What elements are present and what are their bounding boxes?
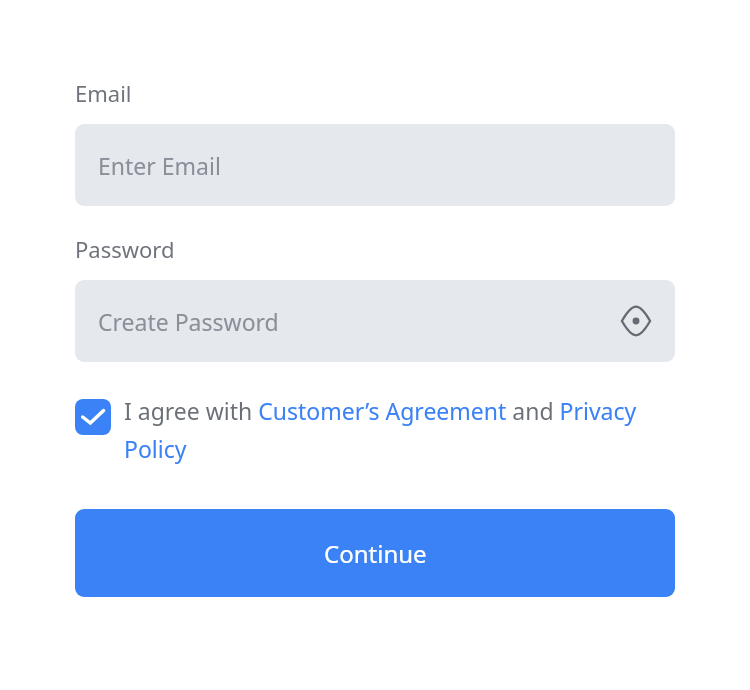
- staticText: Password: [75, 234, 175, 264]
- button[interactable]: Continue: [75, 509, 675, 597]
- button[interactable]: Create Password: [75, 280, 675, 362]
- staticText: Create Password: [98, 306, 279, 337]
- button[interactable]: I agree with Customer’s Agreement and Pr…: [124, 395, 675, 465]
- button[interactable]: Show password: [614, 299, 658, 343]
- staticText: Enter Email: [98, 150, 221, 181]
- staticText: Email: [75, 78, 132, 108]
- staticText: Continue: [324, 537, 427, 570]
- staticText: I agree with Customer’s Agreement and Pr…: [124, 395, 675, 465]
- button[interactable]: Enter Email: [75, 124, 675, 206]
- button[interactable]: Agree to terms checkbox: [75, 399, 111, 435]
